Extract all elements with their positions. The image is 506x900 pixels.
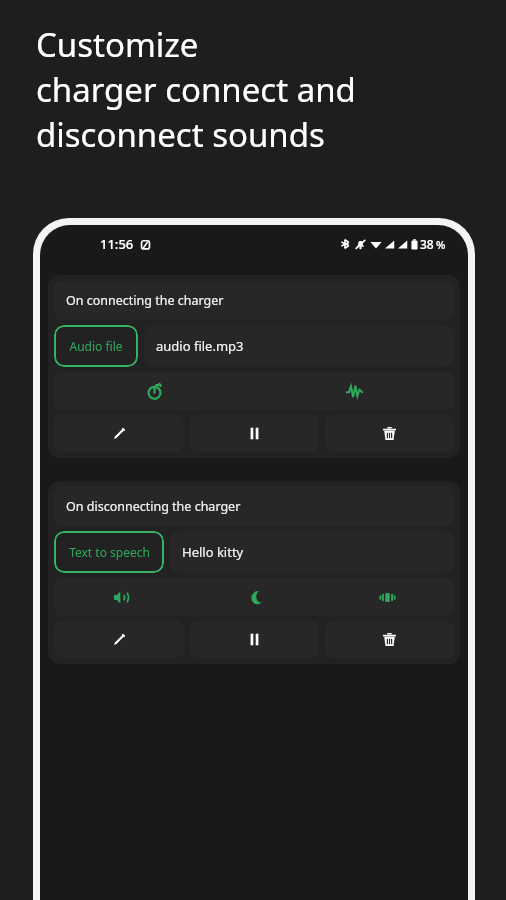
- staticText: 11:56: [100, 235, 134, 253]
- button[interactable]: Volume: [54, 578, 188, 616]
- staticText: audio file.mp3: [156, 337, 244, 355]
- button[interactable]: Delete: [325, 415, 454, 452]
- button[interactable]: Pause: [190, 415, 319, 452]
- staticText: On disconnecting the charger: [66, 498, 241, 515]
- staticText: Hello kitty: [182, 543, 244, 561]
- staticText: Text to speech: [69, 544, 150, 560]
- button[interactable]: Hello kitty: [170, 531, 454, 573]
- staticText: On connecting the charger: [66, 292, 224, 309]
- staticText: charger connect and: [36, 67, 356, 112]
- button[interactable]: On disconnecting the charger: [54, 487, 454, 526]
- button[interactable]: Edit: [54, 621, 184, 658]
- staticText: %: [436, 237, 446, 252]
- button[interactable]: Edit: [54, 415, 184, 452]
- button[interactable]: Vibrate: [321, 578, 454, 616]
- button[interactable]: Do not disturb: [188, 578, 321, 616]
- button[interactable]: Audio file: [54, 325, 138, 367]
- button[interactable]: On connecting the charger: [54, 281, 454, 320]
- staticText: Audio file: [69, 338, 123, 354]
- button[interactable]: Delete: [325, 621, 454, 658]
- button[interactable]: Pause: [190, 621, 319, 658]
- staticText: 38: [420, 236, 434, 252]
- button[interactable]: audio file.mp3: [144, 325, 454, 367]
- staticText: Customize: [36, 22, 199, 67]
- button[interactable]: Text to speech: [54, 531, 164, 573]
- button[interactable]: Delay timer: [54, 372, 254, 410]
- button[interactable]: Waveform: [254, 372, 454, 410]
- staticText: disconnect sounds: [36, 112, 325, 157]
